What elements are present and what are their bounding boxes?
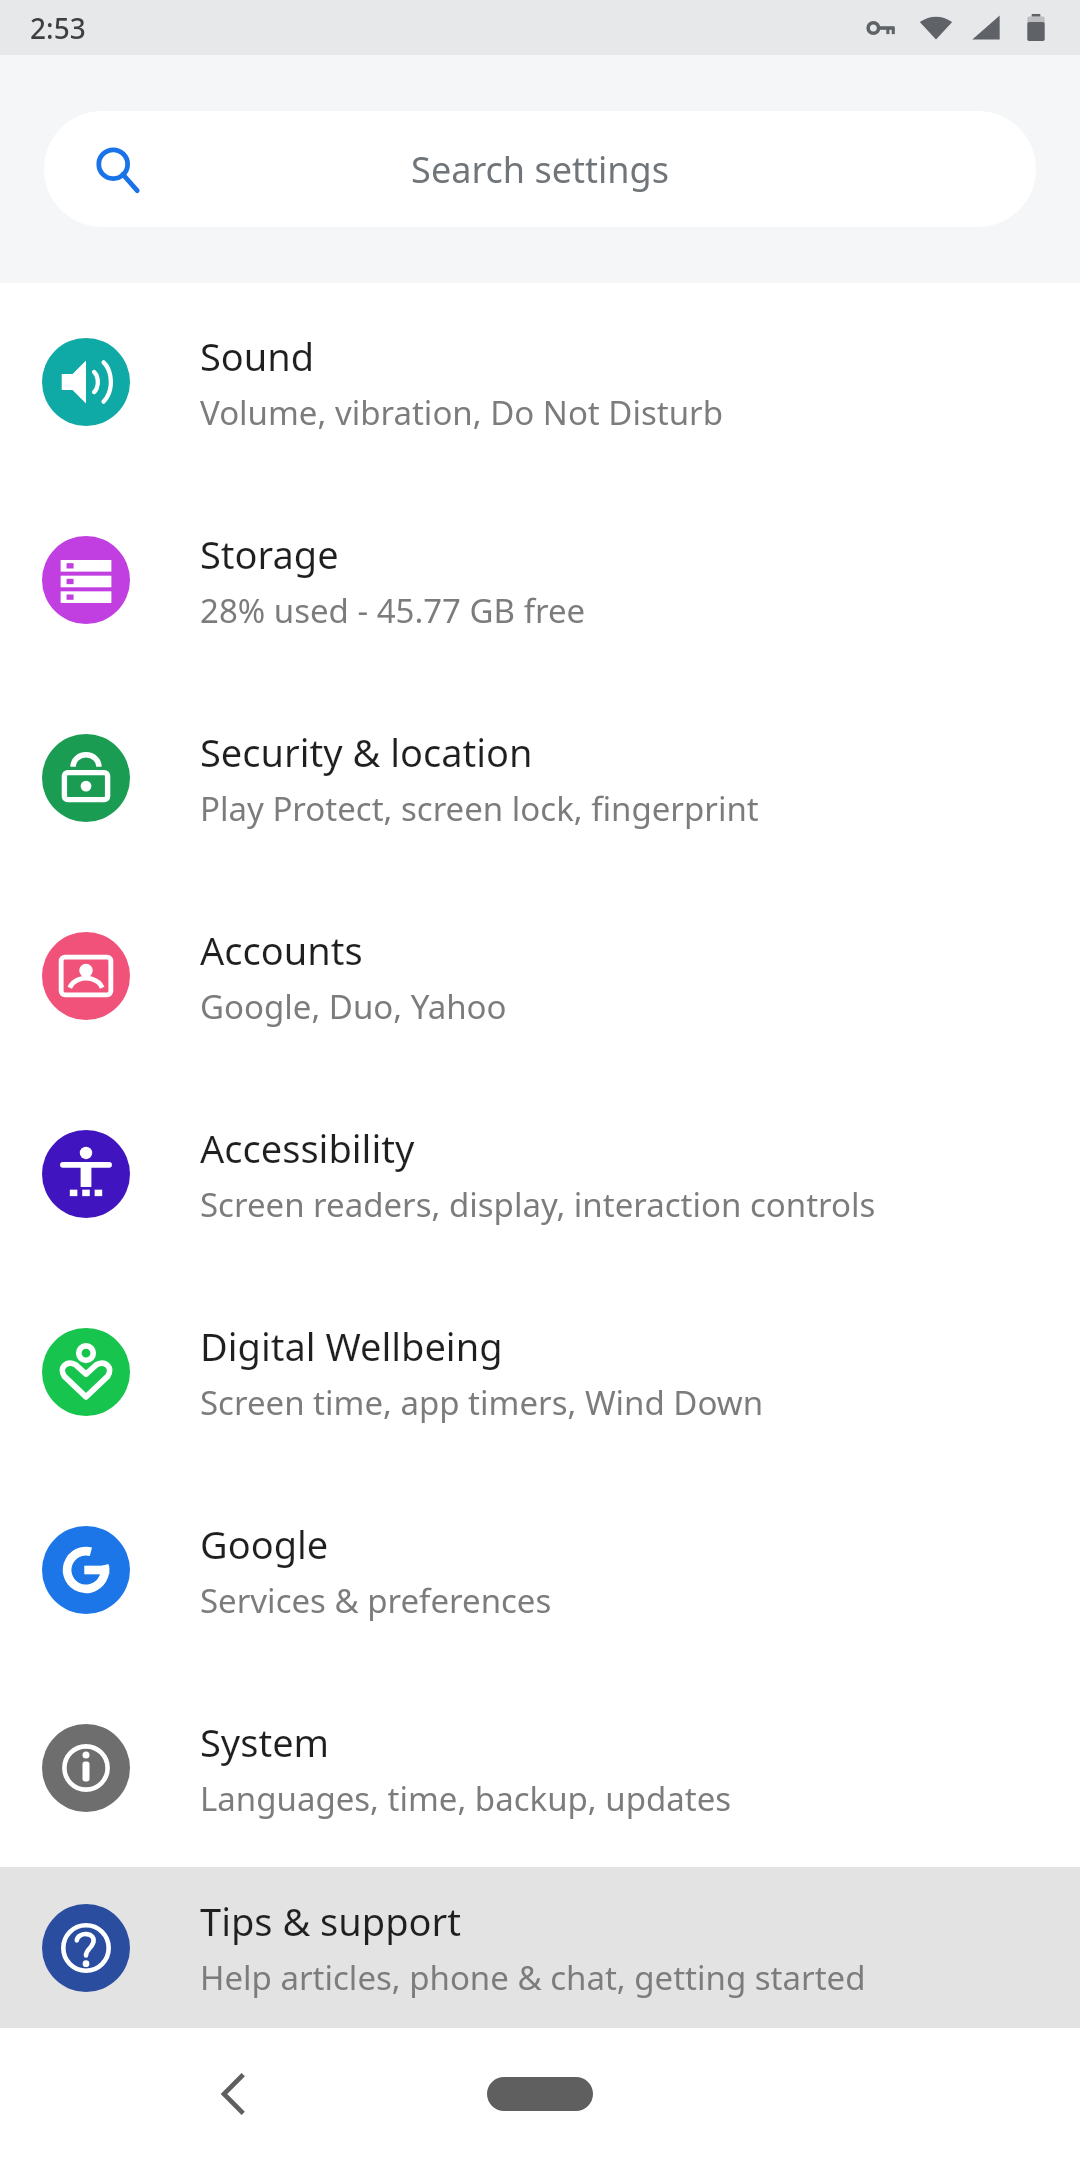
staticText: Google [200,1518,329,1570]
staticText: Screen time, app timers, Wind Down [200,1380,764,1425]
button[interactable]: Tips & support [0,1867,1080,2028]
staticText: Storage [200,528,339,580]
staticText: Languages, time, backup, updates [200,1776,732,1821]
staticText: Digital Wellbeing [200,1320,503,1372]
button[interactable]: Accounts [0,877,1080,1075]
button[interactable]: Storage [0,481,1080,679]
staticText: Play Protect, screen lock, fingerprint [200,786,759,831]
button[interactable]: Home [460,2049,620,2139]
staticText: 2:53 [30,9,86,47]
button[interactable]: System [0,1669,1080,1867]
button[interactable]: Sound [0,283,1080,481]
staticText: 28% used - 45.77 GB free [200,588,586,633]
staticText: Accessibility [200,1122,415,1174]
staticText: Security & location [200,726,533,778]
staticText: System [200,1716,330,1768]
staticText: Sound [200,330,315,382]
button[interactable]: Google [0,1471,1080,1669]
staticText: Services & preferences [200,1578,552,1623]
button[interactable]: Accessibility [0,1075,1080,1273]
button[interactable]: Back [180,2040,288,2148]
staticText: Google, Duo, Yahoo [200,984,507,1029]
staticText: Search settings [142,145,938,194]
staticText: Tips & support [200,1895,461,1947]
button[interactable]: Digital Wellbeing [0,1273,1080,1471]
staticText: Help articles, phone & chat, getting sta… [200,1955,866,2000]
staticText: Screen readers, display, interaction con… [200,1182,876,1227]
staticText: Volume, vibration, Do Not Disturb [200,390,723,435]
staticText: Accounts [200,924,363,976]
button[interactable]: Security & location [0,679,1080,877]
button[interactable]: Search settings [44,111,1036,227]
